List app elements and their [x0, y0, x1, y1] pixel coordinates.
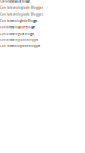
staticText: Con la tecnología de Blogger. [0, 26, 36, 29]
staticText: Con la tecnología de Blogger. [0, 19, 38, 23]
staticText: Con la tecnología de Blogger. [0, 38, 39, 41]
staticText: Con la tecnología de Blogger. [0, 13, 44, 16]
staticText: Con la tecnología de Blogger. [0, 0, 31, 3]
staticText: Con la tecnología de Blogger. [0, 32, 35, 35]
staticText: Con la tecnología de Blogger. [0, 44, 41, 48]
staticText: Con la tecnología de Blogger. [0, 6, 44, 10]
